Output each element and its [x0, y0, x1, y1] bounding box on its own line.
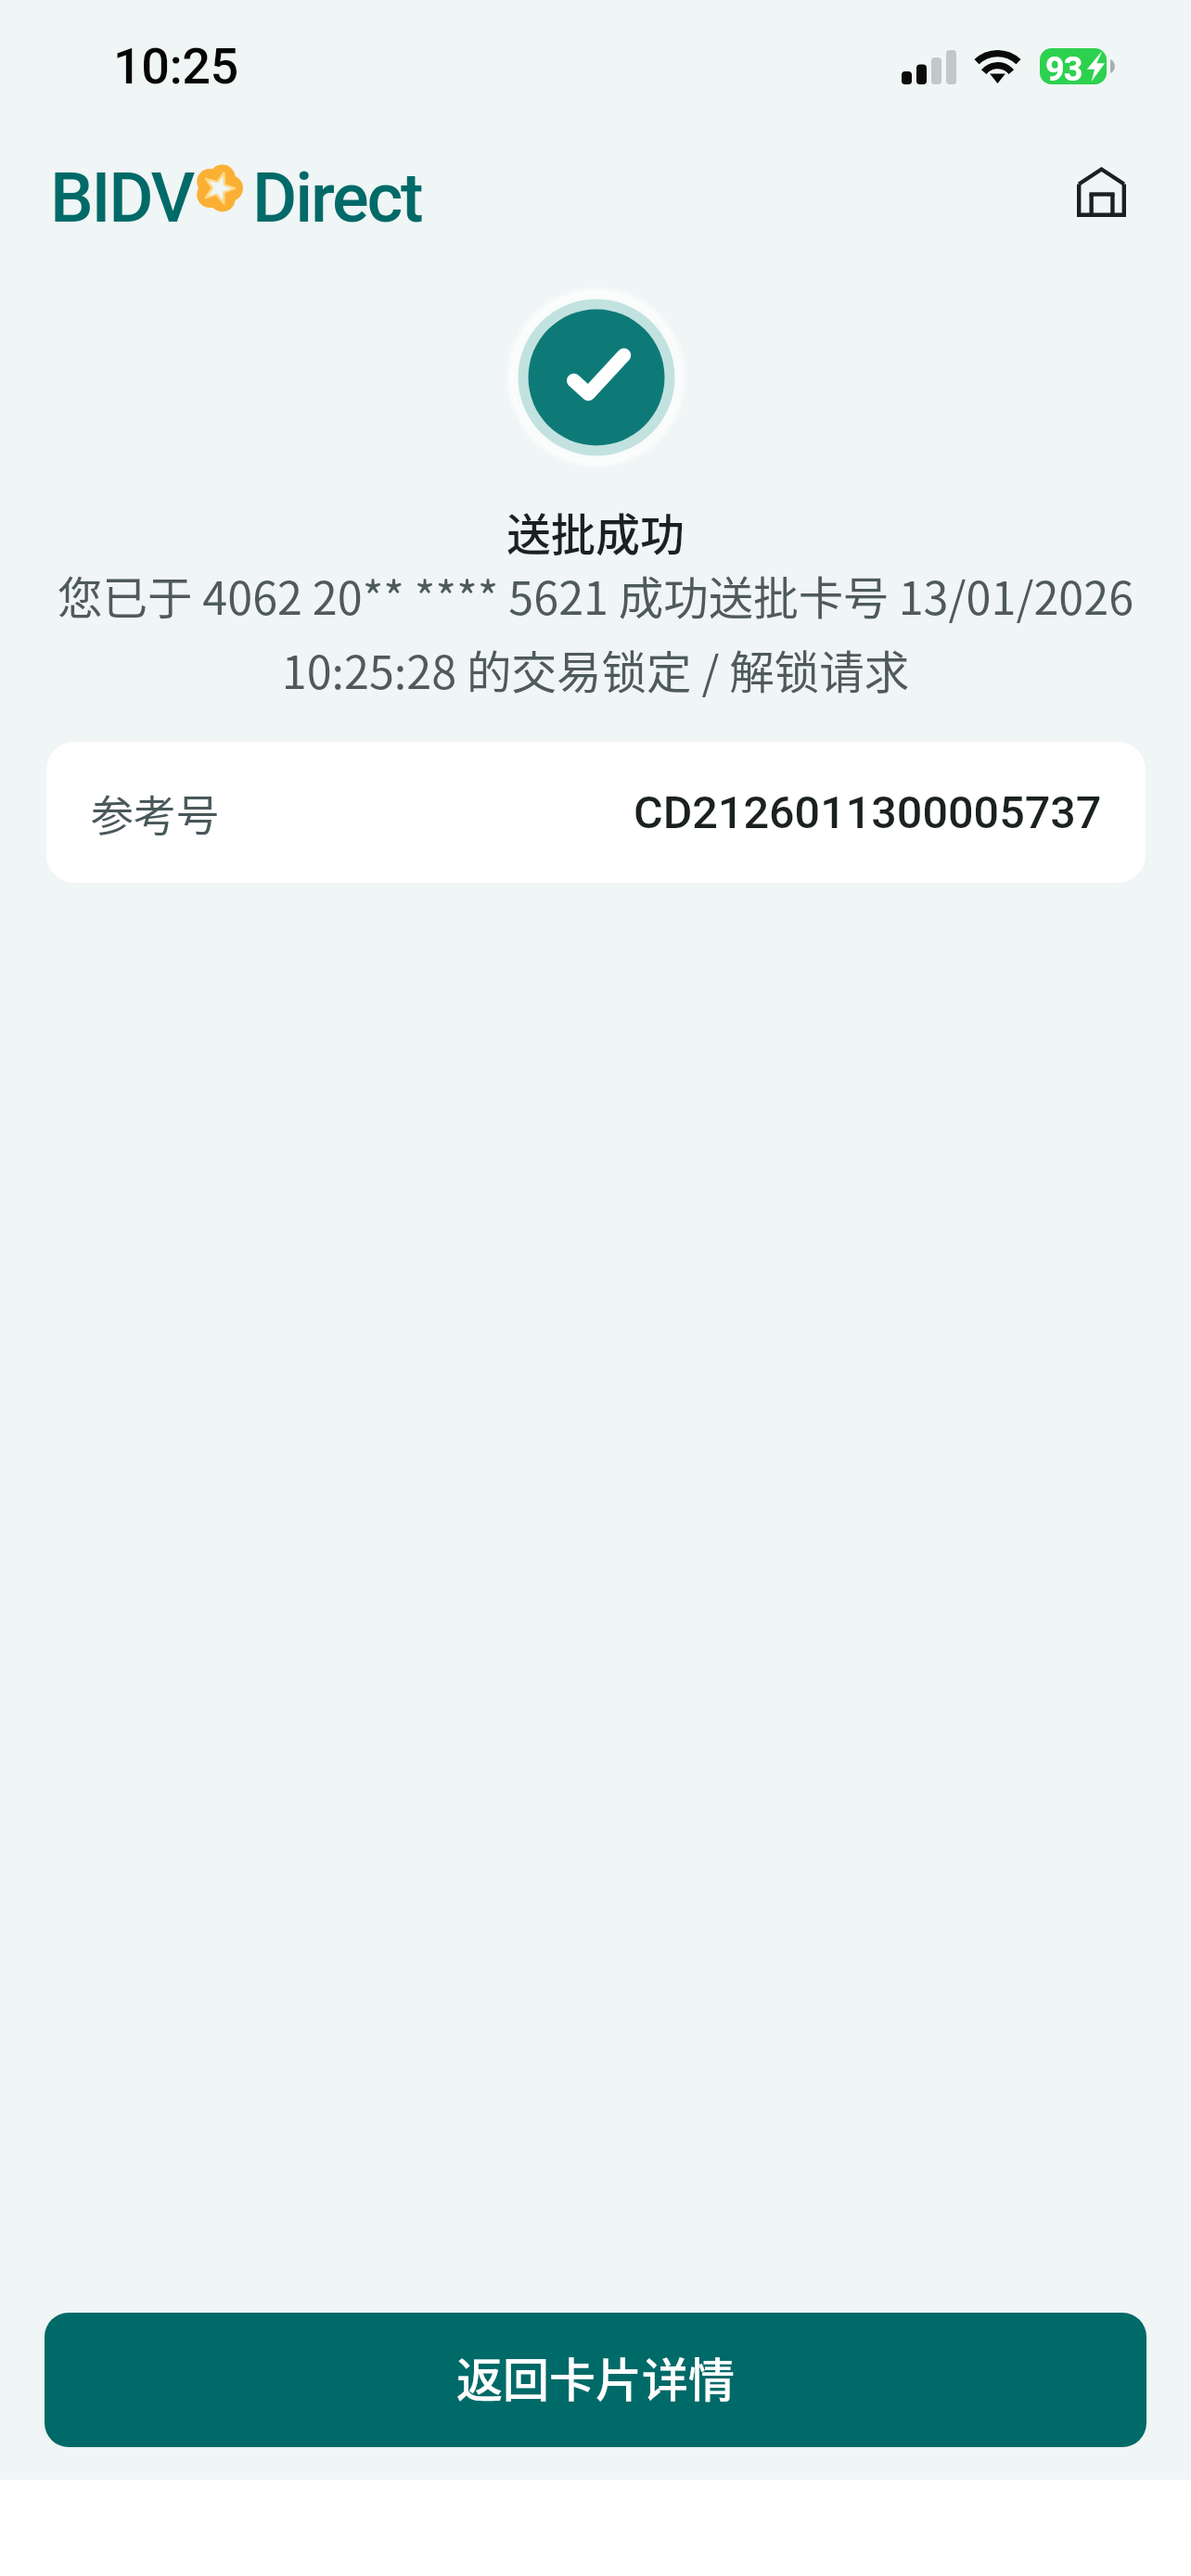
staticText: 您已于 4062 20** **** 5621 成功送批卡号 13/01/202… [28, 563, 1163, 702]
staticText: 10:25 [113, 37, 238, 96]
button[interactable]: Home [1055, 145, 1147, 237]
button[interactable]: 返回卡片详情 [45, 2313, 1146, 2447]
staticText: 93 [1045, 50, 1082, 89]
button[interactable]: 参考号 [46, 742, 1146, 883]
staticText: 参考号 [91, 782, 219, 844]
staticText: Direct [252, 158, 422, 238]
staticText: 送批成功 [506, 499, 685, 564]
staticText: BIDV [50, 158, 194, 238]
staticText: CD2126011300005737 [634, 786, 1102, 839]
staticText: 返回卡片详情 [456, 2343, 735, 2410]
